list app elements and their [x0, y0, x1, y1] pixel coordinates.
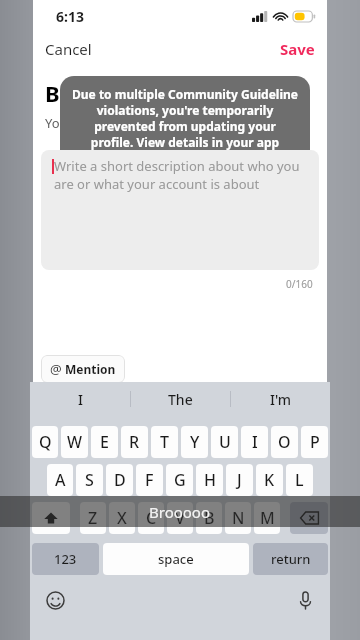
- button[interactable]: space: [103, 543, 249, 575]
- staticText: F: [145, 469, 154, 491]
- button[interactable]: Dictation: [290, 585, 320, 615]
- staticText: Cancel: [45, 39, 92, 59]
- button[interactable]: A: [47, 464, 73, 496]
- button[interactable]: 123: [32, 543, 99, 575]
- staticText: K: [264, 469, 275, 491]
- button[interactable]: return: [253, 543, 328, 575]
- staticText: U: [219, 431, 231, 453]
- staticText: space: [158, 550, 194, 568]
- staticText: J: [237, 469, 242, 491]
- staticText: @: [50, 360, 62, 378]
- staticText: R: [129, 431, 140, 453]
- staticText: L: [295, 469, 304, 491]
- button[interactable]: Shift: [32, 502, 70, 534]
- staticText: A: [55, 469, 66, 491]
- button[interactable]: D: [106, 464, 133, 496]
- button[interactable]: @: [41, 355, 125, 383]
- staticText: I: [252, 431, 258, 453]
- staticText: S: [85, 469, 94, 491]
- button[interactable]: Q: [32, 426, 58, 458]
- staticText: D: [114, 469, 126, 491]
- staticText: O: [278, 431, 291, 453]
- staticText: G: [174, 469, 186, 491]
- staticText: 123: [54, 550, 77, 568]
- button[interactable]: H: [196, 464, 223, 496]
- button[interactable]: B: [196, 502, 222, 534]
- button[interactable]: O: [271, 426, 298, 458]
- button[interactable]: N: [225, 502, 251, 534]
- button[interactable]: I'm: [231, 382, 330, 416]
- staticText: T: [160, 431, 169, 453]
- staticText: Z: [88, 507, 98, 529]
- staticText: Y: [190, 431, 200, 453]
- staticText: 6:13: [56, 7, 84, 26]
- staticText: H: [204, 469, 216, 491]
- button[interactable]: G: [166, 464, 193, 496]
- staticText: I: [78, 390, 83, 409]
- staticText: Due to multiple Community Guideline viol…: [72, 86, 298, 166]
- button[interactable]: Y: [181, 426, 208, 458]
- staticText: Brooooo: [149, 502, 211, 522]
- button[interactable]: X: [109, 502, 135, 534]
- button[interactable]: R: [121, 426, 148, 458]
- staticText: W: [67, 431, 83, 453]
- button[interactable]: Z: [80, 502, 106, 534]
- button[interactable]: E: [91, 426, 118, 458]
- button[interactable]: P: [301, 426, 328, 458]
- button[interactable]: M: [254, 502, 280, 534]
- button[interactable]: Backspace: [290, 502, 328, 534]
- button[interactable]: S: [76, 464, 103, 496]
- staticText: V: [175, 507, 185, 529]
- button[interactable]: W: [61, 426, 88, 458]
- button[interactable]: T: [151, 426, 178, 458]
- button[interactable]: Cancel: [33, 33, 102, 65]
- staticText: Mention: [65, 361, 116, 377]
- button[interactable]: L: [286, 464, 313, 496]
- staticText: E: [100, 431, 109, 453]
- staticText: M: [260, 507, 275, 529]
- button[interactable]: K: [256, 464, 283, 496]
- button[interactable]: The: [131, 382, 230, 416]
- button[interactable]: F: [136, 464, 163, 496]
- staticText: return: [271, 550, 311, 568]
- button[interactable]: V: [167, 502, 193, 534]
- staticText: 0/160: [286, 277, 313, 291]
- staticText: I'm: [270, 390, 292, 409]
- staticText: Write a short description about who you …: [54, 157, 304, 193]
- button[interactable]: U: [211, 426, 238, 458]
- staticText: C: [146, 507, 157, 529]
- button[interactable]: Due to multiple Community Guideline viol…: [60, 76, 310, 176]
- staticText: N: [232, 507, 245, 529]
- button[interactable]: C: [138, 502, 164, 534]
- staticText: B: [204, 507, 215, 529]
- staticText: P: [310, 431, 320, 453]
- button[interactable]: Save: [270, 33, 327, 65]
- staticText: Q: [39, 431, 52, 453]
- button[interactable]: Write a short description about who you …: [41, 150, 319, 270]
- button[interactable]: I: [30, 382, 130, 416]
- button[interactable]: Emoji: [40, 585, 70, 615]
- button[interactable]: I: [241, 426, 268, 458]
- staticText: Yo: [45, 114, 60, 132]
- staticText: The: [168, 390, 193, 409]
- button[interactable]: J: [226, 464, 253, 496]
- staticText: X: [117, 507, 127, 529]
- staticText: B: [45, 78, 60, 108]
- staticText: Save: [280, 39, 315, 59]
